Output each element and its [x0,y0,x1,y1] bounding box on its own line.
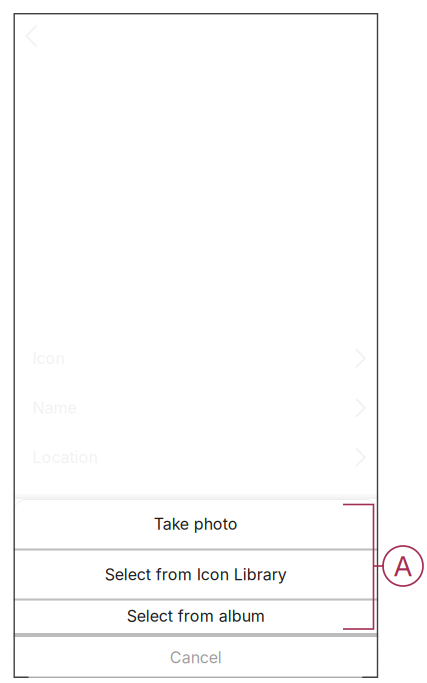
staticText: Name [32,398,76,417]
staticText: Select from album [127,606,265,626]
button[interactable]: Select from album [13,601,378,631]
staticText: Take photo [154,514,238,534]
staticText: Icon [32,349,64,368]
staticText: A [393,549,412,583]
button[interactable]: Take photo [13,500,378,548]
button[interactable]: Back [13,13,57,61]
button[interactable]: Name [13,383,378,432]
button[interactable]: Location [13,432,378,482]
staticText: Cancel [170,648,222,667]
button[interactable]: Select from Icon Library [13,551,378,598]
staticText: Select from Icon Library [105,565,287,584]
button[interactable]: Cancel [13,637,378,678]
button[interactable]: Icon [13,333,378,383]
staticText: Location [32,448,97,467]
